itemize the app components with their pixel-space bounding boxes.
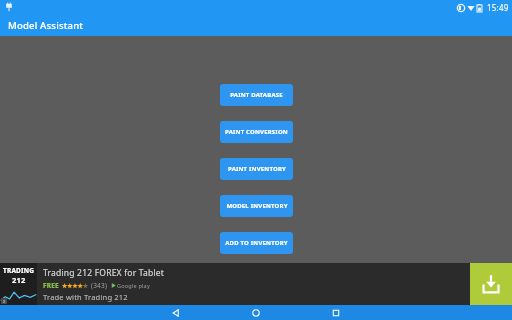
button[interactable]: MODEL INVENTORY [220,195,293,217]
staticText: x [3,298,6,304]
button[interactable]: Home [216,305,296,320]
staticText: (343) [91,281,108,290]
staticText: Trading 212 FOREX for Tablet [43,267,165,279]
staticText: ADD TO INVENTORY [225,239,288,247]
button[interactable]: Close ad [1,298,7,304]
staticText: TRADING [3,266,35,275]
staticText: PAINT CONVERSION [225,128,288,136]
staticText: 212 [12,275,26,285]
staticText: Google play [117,282,150,289]
staticText: PAINT INVENTORY [228,165,286,173]
button[interactable]: PAINT INVENTORY [220,158,293,180]
button[interactable]: PAINT CONVERSION [220,121,293,143]
staticText: PAINT DATABASE [230,91,283,99]
button[interactable]: ADD TO INVENTORY [220,232,293,254]
button[interactable]: Install [470,263,512,305]
staticText: 15:49 [487,2,509,13]
button[interactable]: PAINT DATABASE [220,84,293,106]
staticText: FREE [43,281,59,290]
button[interactable]: Recent apps [296,305,376,320]
staticText: Model Assistant [8,19,84,32]
button[interactable]: Back [136,305,216,320]
staticText: Trade with Trading 212 [43,292,128,302]
staticText: MODEL INVENTORY [226,202,288,210]
button[interactable]: TRADING [0,263,512,305]
